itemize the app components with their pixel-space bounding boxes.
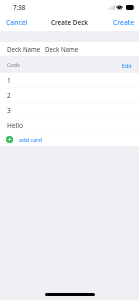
staticText: Create Deck	[51, 18, 89, 27]
button[interactable]: 1	[0, 73, 139, 88]
staticText: Hello	[7, 121, 23, 130]
staticText: Deck Name	[45, 45, 79, 53]
staticText: Create	[113, 18, 135, 27]
staticText: Cancel	[6, 18, 28, 27]
button[interactable]: 3	[0, 103, 139, 118]
staticText: Deck Name	[7, 45, 41, 53]
staticText: 7:38	[13, 3, 26, 11]
button[interactable]: Deck Name	[0, 42, 139, 56]
staticText: Edit	[122, 62, 132, 69]
button[interactable]: Edit	[122, 62, 132, 69]
button[interactable]: add card	[0, 133, 139, 146]
staticText: Cards	[7, 62, 20, 69]
button[interactable]: Create	[107, 14, 139, 31]
staticText: 2	[7, 91, 11, 100]
button[interactable]: Hello	[0, 118, 139, 133]
button[interactable]: Cancel	[0, 14, 34, 31]
staticText: add card	[19, 136, 42, 144]
staticText: 1	[7, 76, 11, 85]
button[interactable]: 2	[0, 88, 139, 103]
staticText: 3	[7, 106, 11, 115]
